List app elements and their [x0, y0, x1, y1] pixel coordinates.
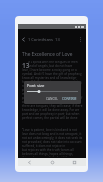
staticText: know all mysteries and all knowledge; an…	[22, 76, 83, 80]
staticText: The Excellence of Love	[22, 51, 73, 58]
button[interactable]: Back	[20, 36, 27, 43]
staticText: not provoked, does not take into account…	[22, 140, 83, 144]
staticText: possessions to feed the poor, and if I s…	[22, 88, 83, 92]
staticText: and of angels, but do not have	[28, 64, 73, 68]
staticText: love, I have become a noisy gong or a cl…	[22, 68, 83, 72]
staticText: are gifts of prophecy, they will be done…	[22, 100, 83, 104]
staticText: CANCEL	[46, 97, 58, 101]
staticText: perfect comes, the partial will be done …	[22, 116, 83, 120]
staticText: but rejoices with the truth; bears all t…	[22, 148, 83, 152]
staticText: cymbal. And if I have the gift of prophe…	[22, 72, 83, 76]
staticText: 1 Corinthians 13	[28, 37, 60, 42]
button[interactable]: Back	[27, 160, 32, 165]
staticText: 13	[22, 61, 30, 70]
staticText: have all faith, so as to remove mountain…	[22, 80, 83, 84]
staticText: If I speak with the tongues of men	[28, 61, 78, 64]
staticText: knowledge, it will be done away. For we …	[22, 108, 83, 112]
button[interactable]: Recent apps	[72, 160, 77, 165]
staticText: not have love, I am nothing. And if I gi…	[22, 84, 83, 88]
button[interactable]: More options	[77, 36, 84, 43]
staticText: love does not brag and is not arrogant, …	[22, 132, 83, 136]
staticText: things. Love never fails; but if there a…	[22, 156, 83, 157]
staticText: my body to be burned, but do not have lo…	[22, 92, 83, 96]
staticText: there are tongues, they will cease; if t…	[22, 104, 83, 108]
staticText: CONFIRM	[62, 97, 77, 101]
staticText: part and we prophesy in part; but when t…	[22, 112, 83, 116]
button[interactable]: Home	[50, 160, 55, 165]
button[interactable]: CONFIRM	[61, 96, 78, 102]
staticText: “Love is patient, love is kind and is no…	[22, 128, 83, 132]
button[interactable]: CANCEL	[45, 96, 59, 102]
staticText: Font size	[27, 83, 45, 89]
staticText: profits me nothing. Love never fails; bu…	[22, 96, 83, 100]
staticText: suffered, it does not rejoice in unright…	[22, 144, 83, 148]
staticText: not act unbecomingly; it does not seek i…	[22, 136, 83, 140]
staticText: believes all things, hopes all things, e…	[22, 152, 83, 156]
